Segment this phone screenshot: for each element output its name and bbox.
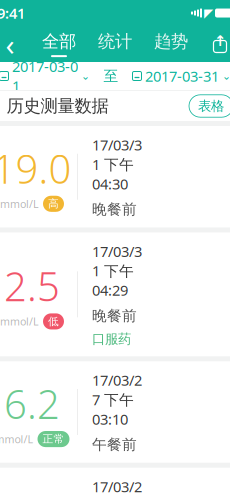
button[interactable]: Back	[0, 27, 27, 61]
staticText: ↑	[214, 33, 226, 49]
staticText: 19.0	[0, 142, 71, 195]
button[interactable]: 2017-03-31	[128, 62, 230, 90]
staticText: ◤	[204, 6, 213, 20]
staticText: 口服药	[92, 331, 131, 347]
staticText: 晚餐前	[92, 307, 137, 325]
staticText: 趋势	[154, 31, 188, 52]
staticText: 2017-03-01	[12, 56, 78, 95]
staticText: 表格	[198, 98, 224, 114]
staticText: 6.2	[4, 377, 60, 430]
button[interactable]: 2017-03-01	[0, 52, 94, 99]
staticText: 至	[103, 67, 118, 85]
staticText: 17/03/27 下午 03:09	[92, 477, 142, 498]
staticText: 高	[48, 197, 59, 210]
button[interactable]: 统计	[91, 27, 139, 61]
staticText: 2017-03-31	[145, 66, 219, 86]
staticText: mmol/L	[0, 197, 39, 211]
staticText: 统计	[98, 31, 132, 52]
staticText: 2.5	[4, 259, 60, 312]
button[interactable]: 6.2	[0, 361, 230, 463]
button[interactable]: 2.5	[0, 232, 230, 356]
staticText: mmol/L	[0, 314, 39, 328]
staticText: 全部	[42, 31, 76, 52]
staticText: 17/03/31 下午 04:30	[92, 135, 142, 193]
staticText: mmol/L	[0, 432, 33, 446]
staticText: 17/03/27 下午 03:10	[92, 370, 142, 429]
staticText: 低	[48, 315, 59, 328]
button[interactable]: 全部	[35, 27, 83, 61]
staticText: ⌄	[222, 70, 230, 82]
button[interactable]: 6.4	[0, 468, 230, 498]
button[interactable]: 趋势	[147, 27, 195, 61]
staticText: 9:41	[0, 3, 25, 23]
button[interactable]: 19.0	[0, 126, 230, 227]
staticText: 午餐前	[92, 436, 137, 454]
staticText: 正常	[42, 432, 64, 446]
staticText: ‹	[5, 24, 14, 63]
staticText: 17/03/31 下午 04:29	[92, 241, 142, 300]
button[interactable]: Share	[203, 27, 230, 61]
button[interactable]: 表格	[189, 95, 230, 117]
staticText: ⌄	[81, 70, 90, 82]
staticText: 历史测量数据	[6, 95, 108, 117]
staticText: 晚餐前	[92, 200, 137, 218]
